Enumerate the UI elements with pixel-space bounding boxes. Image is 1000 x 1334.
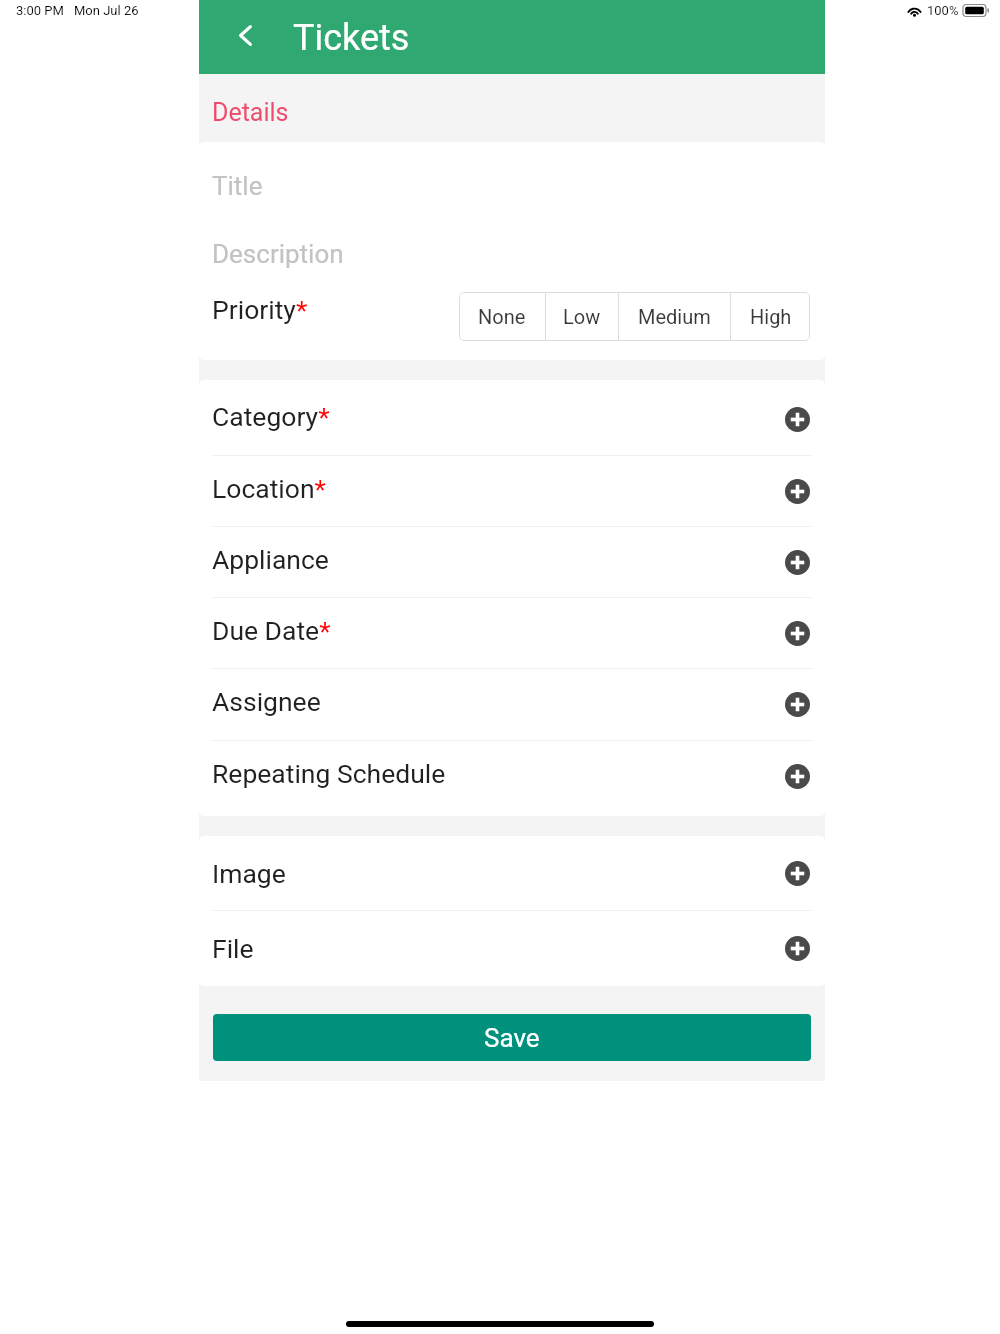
staticText: Location*: [212, 473, 326, 504]
staticText: Description: [212, 239, 344, 269]
staticText: Assignee: [212, 686, 321, 717]
button[interactable]: Medium: [619, 292, 730, 341]
button[interactable]: Back: [220, 10, 270, 60]
staticText: Save: [484, 1023, 540, 1053]
staticText: Medium: [638, 305, 711, 328]
staticText: Mon Jul 26: [74, 3, 139, 18]
button[interactable]: Appliance: [199, 527, 825, 598]
button[interactable]: Repeating Schedule: [199, 741, 825, 812]
staticText: Details: [212, 98, 289, 127]
staticText: Category*: [212, 401, 330, 432]
staticText: 100%: [927, 3, 959, 18]
button[interactable]: None: [459, 292, 545, 341]
button[interactable]: Location*: [199, 456, 825, 527]
staticText: Low: [563, 305, 601, 328]
staticText: Title: [212, 171, 263, 201]
staticText: File: [212, 933, 254, 964]
staticText: None: [478, 305, 526, 328]
button[interactable]: Image: [199, 836, 825, 911]
staticText: High: [750, 305, 792, 328]
staticText: Image: [212, 858, 286, 889]
button[interactable]: Save: [213, 1014, 811, 1061]
button[interactable]: Due Date*: [199, 598, 825, 669]
button[interactable]: Category*: [199, 384, 825, 455]
staticText: Priority*: [212, 294, 308, 325]
staticText: 3:00 PM: [16, 3, 64, 18]
button[interactable]: Assignee: [199, 669, 825, 740]
button[interactable]: File: [199, 911, 825, 986]
button[interactable]: Low: [546, 292, 618, 341]
staticText: Appliance: [212, 544, 329, 575]
button[interactable]: High: [731, 292, 810, 341]
staticText: Tickets: [293, 17, 410, 59]
staticText: Repeating Schedule: [212, 758, 446, 789]
staticText: Due Date*: [212, 615, 331, 646]
